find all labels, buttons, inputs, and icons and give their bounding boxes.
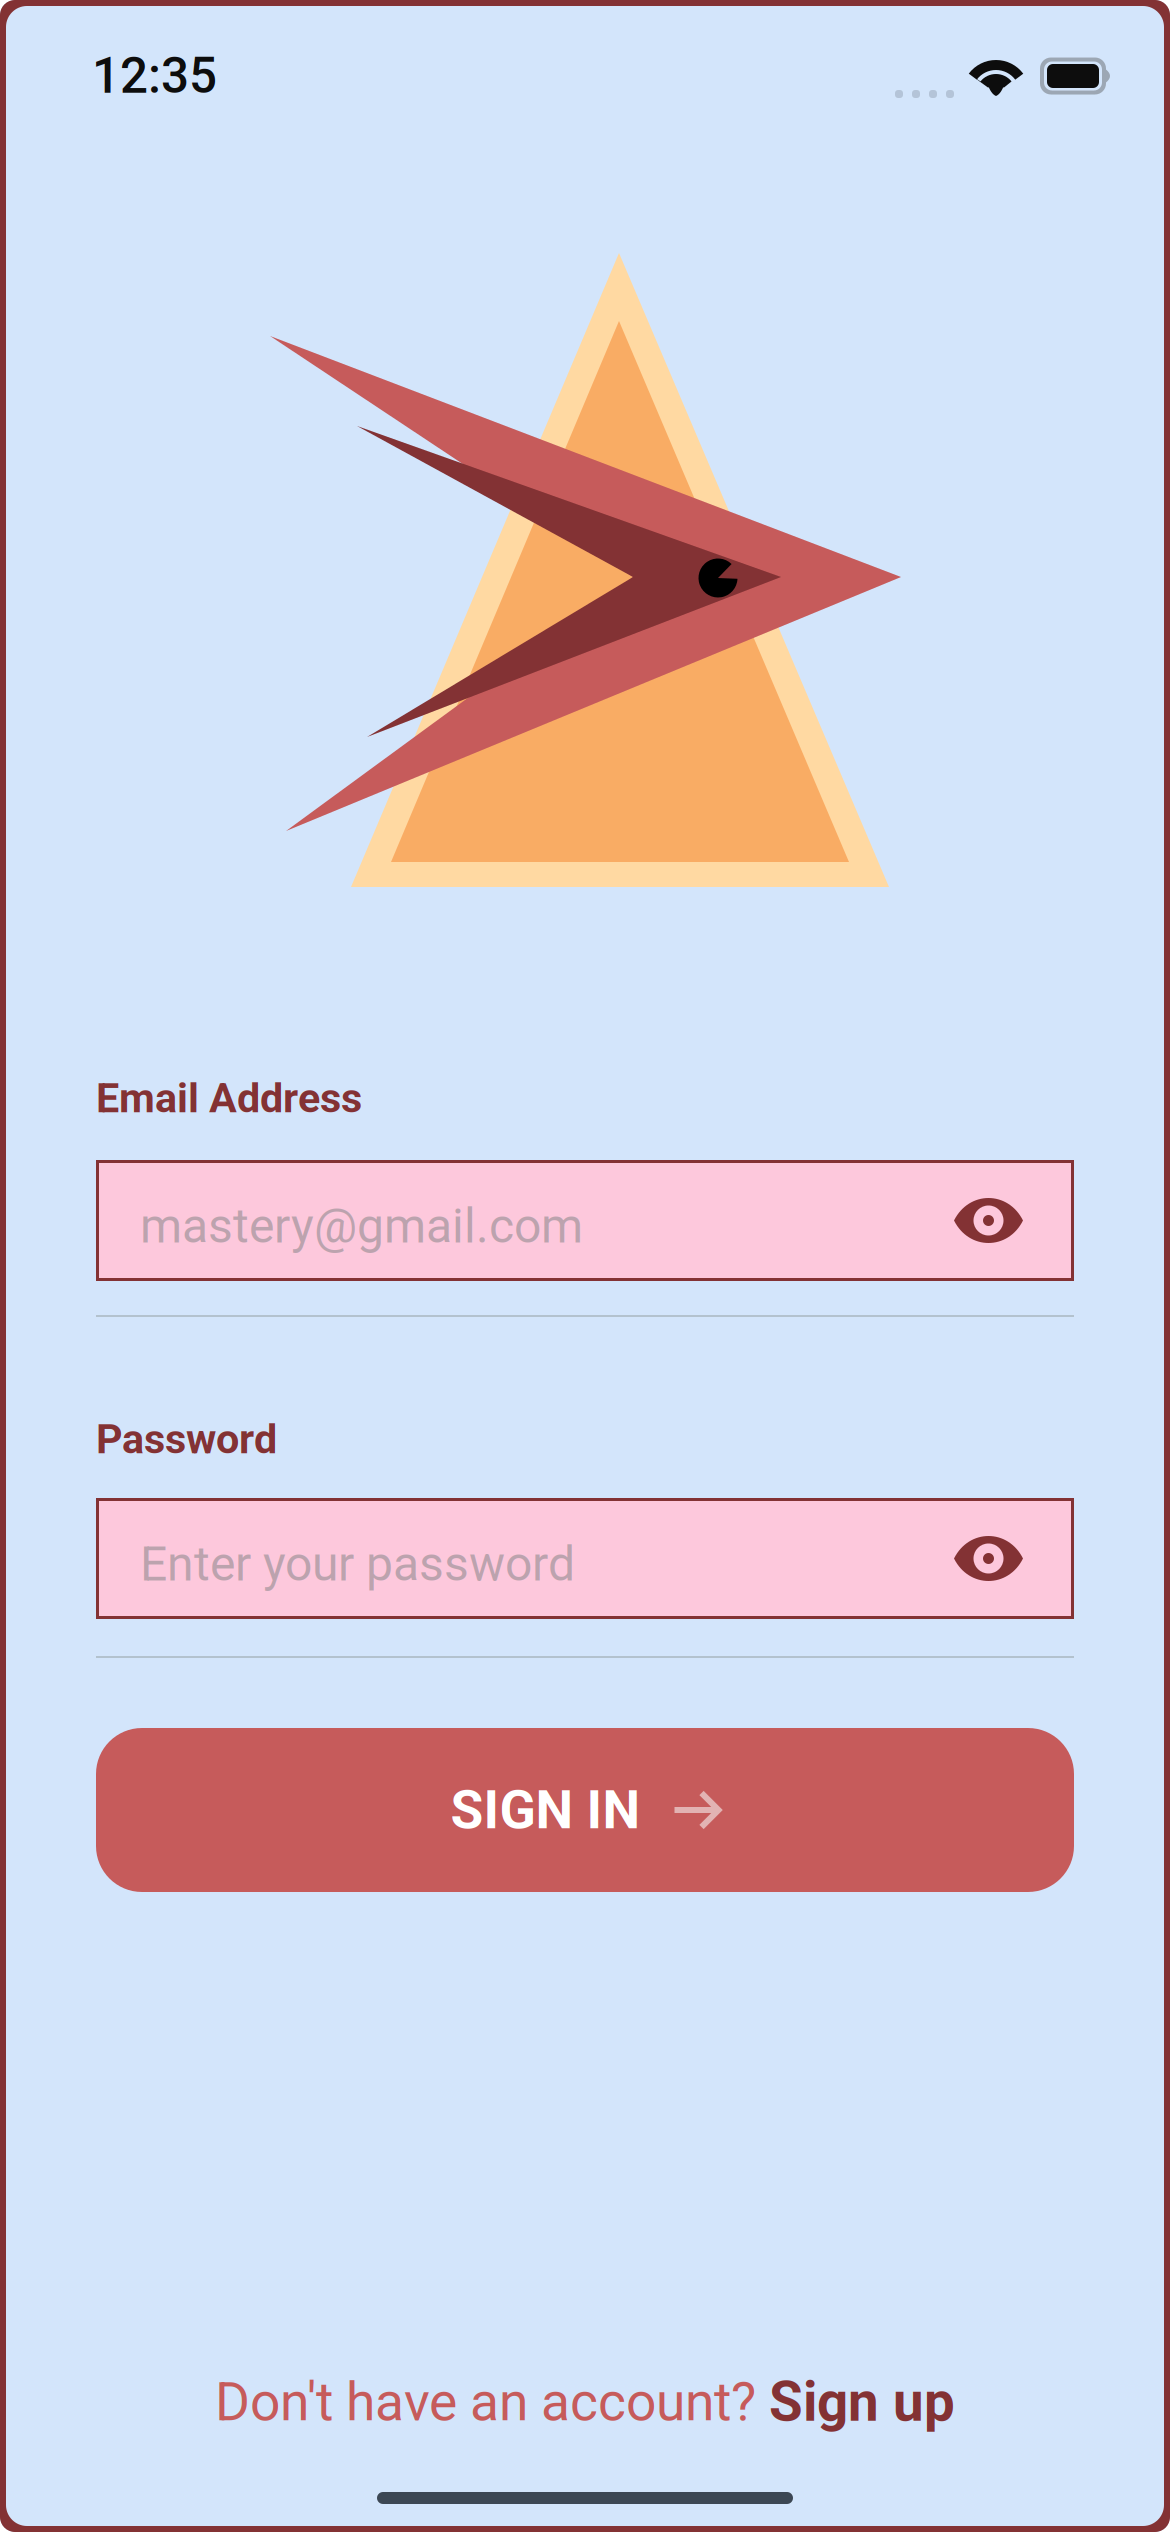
staticText: Password bbox=[96, 1415, 277, 1463]
staticText: Don't have an account? bbox=[215, 2371, 769, 2433]
staticText: SIGN IN bbox=[450, 1779, 640, 1841]
button[interactable]: Email Address bbox=[96, 1160, 1074, 1281]
button[interactable]: SIGN IN bbox=[96, 1728, 1074, 1892]
button[interactable]: Show email bbox=[954, 1198, 1071, 1242]
button[interactable]: Password bbox=[96, 1498, 1074, 1619]
staticText: 12:35 bbox=[92, 47, 217, 105]
staticText: mastery@gmail.com bbox=[140, 1198, 583, 1254]
button[interactable]: Don't have an account? bbox=[215, 2372, 955, 2432]
staticText: Enter your password bbox=[140, 1536, 575, 1592]
button[interactable]: Show password bbox=[954, 1536, 1071, 1580]
staticText: Email Address bbox=[96, 1074, 362, 1122]
staticText: Sign up bbox=[769, 2370, 955, 2434]
